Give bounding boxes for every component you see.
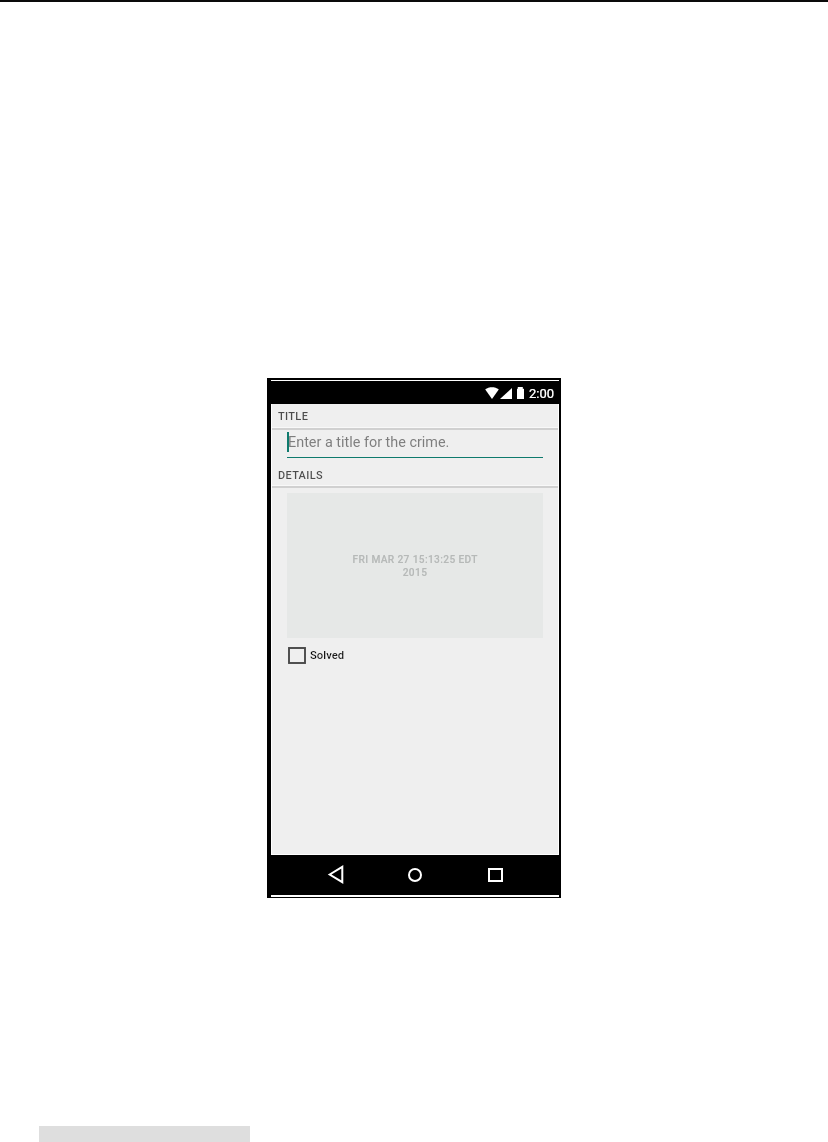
button[interactable]: Solved xyxy=(289,648,345,663)
staticText: DETAILS xyxy=(278,469,324,482)
staticText: TITLE xyxy=(278,410,309,423)
staticText: Solved xyxy=(310,649,345,662)
button[interactable]: Enter a title for the crime. xyxy=(272,429,558,462)
button[interactable]: Home xyxy=(401,855,428,894)
button[interactable]: FRI MAR 27 15:13:25 EDT 2015 xyxy=(287,493,543,638)
staticText: FRI MAR 27 15:13:25 EDT 2015 xyxy=(347,554,483,578)
staticText: Enter a title for the crime. xyxy=(288,434,450,451)
button[interactable]: Back xyxy=(322,855,349,894)
button[interactable]: Recent apps xyxy=(482,855,509,894)
staticText: 2:00 xyxy=(529,386,555,401)
